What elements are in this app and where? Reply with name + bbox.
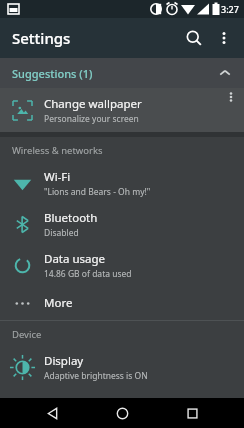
- button[interactable]: Search: [180, 24, 208, 52]
- button[interactable]: Back: [34, 398, 70, 428]
- button[interactable]: More: [0, 286, 244, 320]
- button[interactable]: Suggestions (1): [0, 58, 244, 88]
- staticText: Data usage: [44, 251, 106, 267]
- staticText: Suggestions (1): [12, 66, 93, 81]
- button[interactable]: Recent apps: [174, 398, 210, 428]
- staticText: Settings: [12, 28, 71, 48]
- button[interactable]: Change wallpaper: [0, 88, 244, 132]
- staticText: Wireless & networks: [12, 144, 103, 157]
- button[interactable]: Data usage: [0, 245, 244, 286]
- staticText: Bluetooth: [44, 210, 98, 226]
- staticText: Adaptive brightness is ON: [44, 370, 148, 382]
- button[interactable]: Wi-Fi: [0, 163, 244, 204]
- staticText: More: [44, 295, 73, 311]
- staticText: Device: [12, 328, 42, 341]
- staticText: 14.86 GB of data used: [44, 268, 132, 280]
- staticText: Change wallpaper: [44, 96, 142, 112]
- button[interactable]: Suggestion options: [218, 88, 244, 132]
- button[interactable]: More options: [210, 24, 238, 52]
- staticText: Display: [44, 353, 84, 369]
- staticText: Disabled: [44, 227, 79, 239]
- staticText: Personalize your screen: [44, 113, 139, 125]
- staticText: "Lions and Bears - Oh my!": [44, 186, 151, 198]
- button[interactable]: Home: [104, 398, 140, 428]
- button[interactable]: Bluetooth: [0, 204, 244, 245]
- button[interactable]: Display: [0, 347, 244, 388]
- staticText: Wi-Fi: [44, 169, 71, 185]
- staticText: 3:27: [221, 3, 239, 15]
